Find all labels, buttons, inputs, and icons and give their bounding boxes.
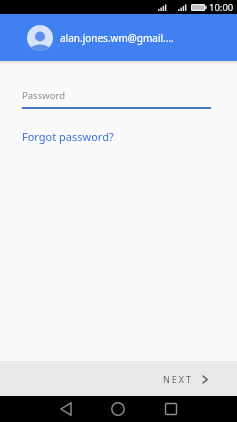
staticText: NEXT <box>163 373 194 385</box>
button[interactable] <box>111 402 125 416</box>
button[interactable] <box>59 402 73 416</box>
button[interactable]: NEXT <box>163 373 237 385</box>
button[interactable] <box>164 402 178 416</box>
staticText: Password <box>22 89 65 102</box>
button[interactable]: Forgot password? <box>22 129 114 144</box>
staticText: Forgot password? <box>22 129 114 144</box>
staticText: 10:00 <box>209 1 234 14</box>
staticText: alan.jones.wm@gmail.... <box>60 31 174 45</box>
